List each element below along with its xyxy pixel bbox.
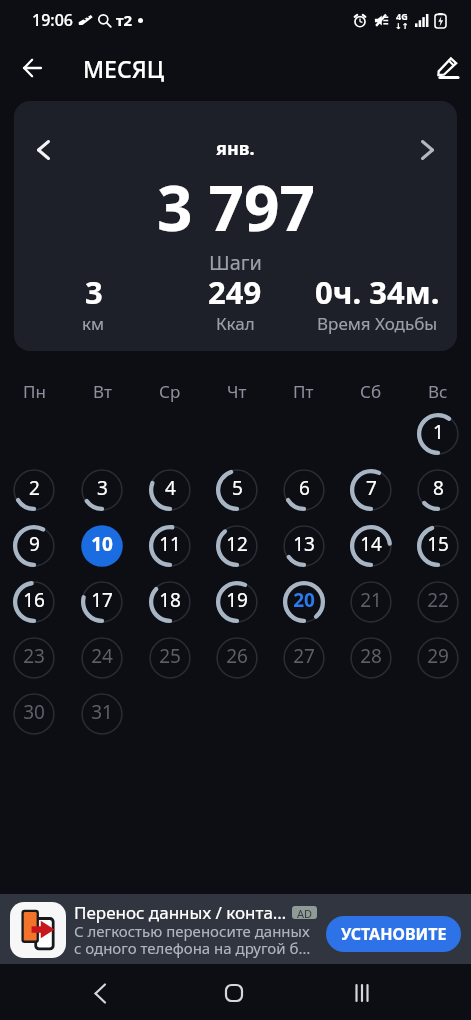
- staticText: 22: [427, 587, 449, 613]
- staticText: 17: [91, 587, 113, 613]
- button[interactable]: 8: [416, 468, 460, 512]
- button[interactable]: Редактировать: [426, 46, 470, 90]
- button[interactable]: 6: [282, 468, 326, 512]
- staticText: 26: [226, 643, 248, 669]
- staticText: 19: [226, 587, 248, 613]
- staticText: 20: [293, 587, 315, 613]
- staticText: 18: [159, 587, 181, 613]
- staticText: км: [82, 312, 105, 335]
- staticText: 25: [159, 643, 181, 669]
- staticText: Сб: [360, 380, 382, 403]
- button[interactable]: 11: [148, 524, 192, 568]
- staticText: С легкостью переносите данных: [74, 921, 310, 941]
- staticText: 31: [91, 699, 113, 725]
- staticText: 11: [159, 531, 181, 557]
- button[interactable]: 15: [416, 524, 460, 568]
- button[interactable]: 17: [80, 580, 124, 624]
- button[interactable]: 10: [80, 524, 124, 568]
- staticText: Ккал: [216, 312, 255, 335]
- button[interactable]: Главный экран: [210, 969, 258, 1017]
- staticText: Ср: [159, 380, 181, 403]
- button[interactable]: 21: [349, 580, 393, 624]
- staticText: Вт: [93, 380, 112, 403]
- button[interactable]: 31: [80, 692, 124, 736]
- staticText: 8: [433, 475, 444, 501]
- staticText: ↓↑: [395, 22, 409, 31]
- button[interactable]: 3: [80, 468, 124, 512]
- staticText: с одного телефона на другой б…: [74, 938, 311, 958]
- button[interactable]: 4: [148, 468, 192, 512]
- staticText: 1: [433, 419, 444, 445]
- staticText: янв.: [216, 136, 255, 161]
- staticText: 30: [23, 699, 45, 725]
- staticText: 16: [23, 587, 45, 613]
- staticText: 2: [29, 475, 40, 501]
- button[interactable]: Назад: [76, 969, 124, 1017]
- button[interactable]: 9: [12, 524, 56, 568]
- staticText: МЕСЯЦ: [83, 53, 164, 84]
- button[interactable]: 7: [349, 468, 393, 512]
- button[interactable]: 30: [12, 692, 56, 736]
- staticText: 3: [97, 475, 108, 501]
- staticText: т2: [116, 10, 133, 30]
- staticText: 0ч. 34м.: [315, 271, 440, 313]
- staticText: Пн: [23, 380, 46, 403]
- button[interactable]: Предыдущий месяц: [25, 131, 62, 168]
- button[interactable]: 20: [282, 580, 326, 624]
- staticText: Пт: [293, 380, 314, 403]
- button[interactable]: 19: [215, 580, 259, 624]
- staticText: Вс: [428, 380, 448, 403]
- button[interactable]: 26: [215, 636, 259, 680]
- button[interactable]: 1: [416, 412, 460, 456]
- staticText: 12: [226, 531, 248, 557]
- staticText: 6: [299, 475, 310, 501]
- button[interactable]: Перенос данных: [10, 902, 66, 958]
- staticText: 3: [85, 271, 103, 313]
- staticText: 27: [293, 643, 315, 669]
- button[interactable]: 12: [215, 524, 259, 568]
- staticText: 29: [427, 643, 449, 669]
- staticText: 7: [366, 475, 377, 501]
- staticText: AD: [297, 906, 313, 919]
- staticText: 9: [29, 531, 40, 557]
- staticText: 14: [360, 531, 382, 557]
- staticText: 28: [360, 643, 382, 669]
- staticText: 13: [293, 531, 315, 557]
- button[interactable]: 23: [12, 636, 56, 680]
- staticText: 21: [360, 587, 382, 613]
- button[interactable]: 22: [416, 580, 460, 624]
- staticText: 10: [91, 531, 113, 557]
- button[interactable]: 29: [416, 636, 460, 680]
- staticText: УСТАНОВИТЕ: [341, 923, 447, 945]
- staticText: Чт: [227, 380, 247, 403]
- button[interactable]: 5: [215, 468, 259, 512]
- staticText: 15: [427, 531, 449, 557]
- staticText: Перенос данных / конта…: [74, 901, 287, 924]
- staticText: 4: [165, 475, 176, 501]
- staticText: Время Ходьбы: [317, 312, 438, 335]
- staticText: 5: [232, 475, 243, 501]
- button[interactable]: 25: [148, 636, 192, 680]
- button[interactable]: 16: [12, 580, 56, 624]
- button[interactable]: Следующий месяц: [409, 131, 446, 168]
- staticText: 24: [91, 643, 113, 669]
- button[interactable]: 27: [282, 636, 326, 680]
- button[interactable]: 18: [148, 580, 192, 624]
- staticText: 249: [208, 271, 262, 313]
- button[interactable]: 13: [282, 524, 326, 568]
- staticText: Шаги: [209, 249, 262, 276]
- button[interactable]: Недавние приложения: [338, 969, 386, 1017]
- staticText: 3 797: [157, 165, 315, 249]
- button[interactable]: 14: [349, 524, 393, 568]
- staticText: 19:06: [32, 9, 73, 31]
- button[interactable]: 2: [12, 468, 56, 512]
- staticText: 4G: [396, 10, 408, 22]
- button[interactable]: 24: [80, 636, 124, 680]
- staticText: 23: [23, 643, 45, 669]
- button[interactable]: Назад: [10, 46, 54, 90]
- button[interactable]: 28: [349, 636, 393, 680]
- button[interactable]: УСТАНОВИТЕ: [326, 916, 461, 952]
